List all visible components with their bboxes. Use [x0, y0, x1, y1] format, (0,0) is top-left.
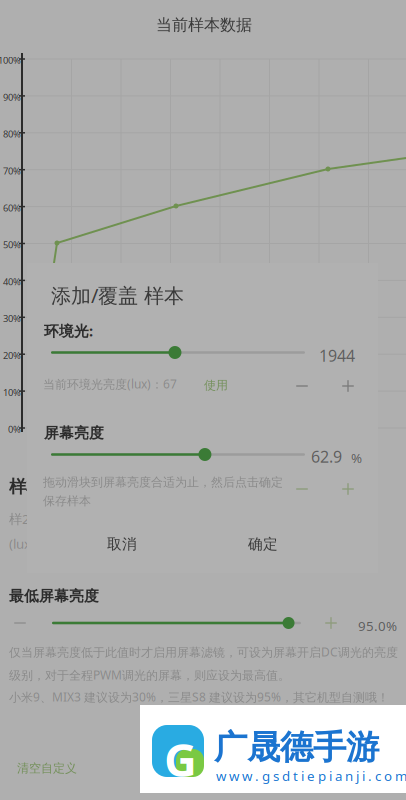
staticText: 0%: [8, 423, 21, 435]
staticText: 取消: [107, 535, 137, 553]
button[interactable]: Increase screen brightness: [337, 478, 359, 500]
staticText: 90%: [3, 91, 21, 103]
button[interactable]: Decrease ambient light: [291, 375, 313, 397]
staticText: 仅当屏幕亮度低于此值时才启用屏幕滤镜，可设为屏幕开启DC调光的亮度: [9, 644, 398, 660]
staticText: 60%: [3, 202, 21, 214]
staticText: 当前环境光亮度(lux)：67: [43, 376, 177, 392]
staticText: 最低屏幕亮度: [9, 587, 99, 605]
staticText: 70%: [3, 165, 21, 177]
button[interactable]: 取消: [79, 526, 165, 562]
staticText: 小米9、MIX3 建议设为30%，三星S8 建议设为95%，其它机型自测哦！: [9, 689, 389, 705]
staticText: 30%: [3, 312, 21, 325]
staticText: 样本: [9, 476, 43, 497]
button[interactable]: 确定: [220, 526, 306, 562]
staticText: 拖动滑块到屏幕亮度合适为止，然后点击确定: [43, 475, 283, 490]
button[interactable]: 清空自定义: [9, 753, 85, 784]
staticText: (lux): [9, 535, 35, 552]
staticText: G: [164, 729, 197, 789]
staticText: 当前样本数据: [156, 15, 252, 35]
staticText: 62.9: [311, 446, 342, 467]
staticText: 20%: [3, 349, 21, 362]
staticText: 保存样本: [43, 494, 91, 508]
staticText: %: [351, 449, 362, 467]
staticText: 80%: [3, 128, 21, 140]
button[interactable]: Decrease screen brightness: [291, 478, 313, 500]
staticText: 添加/覆盖 样本: [51, 282, 184, 309]
button[interactable]: 使用: [194, 373, 238, 398]
staticText: 50%: [3, 238, 21, 251]
staticText: 确定: [248, 535, 278, 553]
staticText: 级别，对于全程PWM调光的屏幕，则应设为最高值。: [9, 667, 290, 683]
staticText: 1944: [319, 345, 355, 366]
button[interactable]: Decrease minimum brightness: [9, 612, 31, 634]
staticText: 样2: [9, 510, 30, 528]
staticText: 清空自定义: [17, 761, 77, 776]
staticText: 广晟德手游: [214, 727, 379, 768]
staticText: 使用: [204, 378, 228, 393]
staticText: w w w . g s d t i e p i a n j i . c o m: [216, 767, 406, 785]
staticText: 95.0%: [358, 617, 397, 635]
button[interactable]: Increase minimum brightness: [320, 612, 342, 634]
staticText: 环境光:: [44, 321, 93, 340]
staticText: 屏幕亮度: [44, 424, 104, 442]
staticText: 10%: [3, 386, 21, 398]
staticText: 100%: [0, 54, 21, 66]
staticText: 40%: [3, 275, 21, 288]
button[interactable]: Increase ambient light: [337, 375, 359, 397]
